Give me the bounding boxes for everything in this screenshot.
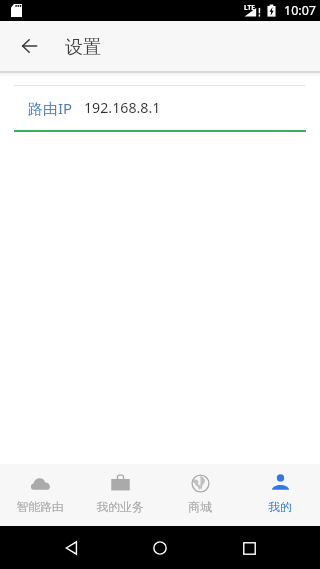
staticText: 我的 — [268, 500, 292, 515]
button[interactable]: Home — [142, 530, 178, 566]
button[interactable]: 我的业务 — [80, 464, 160, 526]
staticText: 路由IP — [28, 98, 73, 116]
staticText: LTE — [244, 3, 255, 12]
staticText: 设置 — [65, 36, 101, 59]
button[interactable]: 智能路由 — [0, 464, 80, 526]
button[interactable]: Recents — [231, 530, 267, 566]
staticText: 智能路由 — [16, 500, 64, 515]
staticText: 我的业务 — [96, 500, 144, 515]
button[interactable]: Back — [9, 26, 49, 66]
staticText: 192.168.8.1 — [84, 98, 161, 116]
button[interactable]: 路由IP — [0, 86, 320, 132]
button[interactable]: 商城 — [160, 464, 240, 526]
staticText: 10:07 — [284, 2, 316, 19]
button[interactable]: 我的 — [240, 464, 320, 526]
staticText: 商城 — [188, 500, 212, 515]
button[interactable]: Back — [53, 530, 89, 566]
